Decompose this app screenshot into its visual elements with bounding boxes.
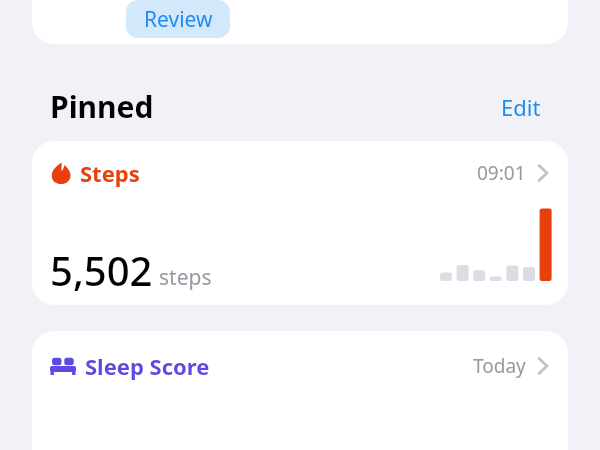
button[interactable]: Steps: [32, 141, 568, 305]
staticText: steps: [159, 263, 212, 292]
staticText: Review: [144, 5, 213, 34]
staticText: Sleep Score: [85, 351, 210, 381]
button[interactable]: Edit: [501, 92, 541, 122]
staticText: Today: [473, 353, 526, 379]
staticText: Pinned: [50, 86, 154, 124]
other: Steps: [50, 162, 72, 184]
other: Sleep Score: [50, 357, 76, 375]
staticText: 09:01: [477, 160, 526, 186]
button[interactable]: Review: [32, 0, 568, 44]
staticText: Edit: [501, 92, 541, 122]
staticText: Steps: [80, 158, 140, 188]
button[interactable]: Sleep Score: [32, 331, 568, 450]
staticText: 5,502: [50, 243, 153, 297]
button[interactable]: Review: [126, 0, 230, 38]
